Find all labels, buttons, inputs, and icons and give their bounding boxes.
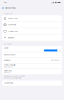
button[interactable]: Text Message: [2, 28, 62, 34]
staticText: Downloads use storage on this iPhone and…: [4, 75, 25, 79]
staticText: Save to Photos: [3, 82, 13, 84]
staticText: High Efficiency: [3, 66, 13, 68]
staticText: High Efficiency: [50, 59, 60, 61]
staticText: Download: [3, 59, 10, 61]
staticText: 9:41: [4, 2, 7, 3]
staticText: Text Message: [8, 30, 18, 32]
staticText: Video Settings: [5, 7, 16, 9]
staticText: PLAYBACK: [4, 43, 12, 45]
staticText: Preferred Quality: [3, 64, 15, 66]
button[interactable]: Home Screen: [2, 15, 62, 21]
button[interactable]: Cellular Data: [2, 69, 62, 74]
staticText: Playback Speed: [3, 54, 15, 56]
staticText: SHORTCUTS: [4, 13, 13, 15]
button[interactable]: Playback Speed: [2, 52, 62, 57]
button[interactable]: Preferred Quality: [2, 63, 62, 69]
button[interactable]: Take Photo: [2, 22, 62, 28]
button[interactable]: Bluetooth: [2, 34, 62, 41]
button[interactable]: Save to Photos: [2, 80, 62, 86]
staticText: Standard: [3, 72, 10, 73]
staticText: Bluetooth: [8, 37, 14, 38]
staticText: Take Photo: [8, 24, 16, 26]
staticText: Home Screen: [8, 17, 18, 19]
button[interactable]: Back to Video Settings: [0, 5, 16, 11]
staticText: Volume: [3, 47, 8, 49]
button[interactable]: Download: [2, 58, 62, 63]
staticText: Cellular Data: [3, 70, 11, 71]
